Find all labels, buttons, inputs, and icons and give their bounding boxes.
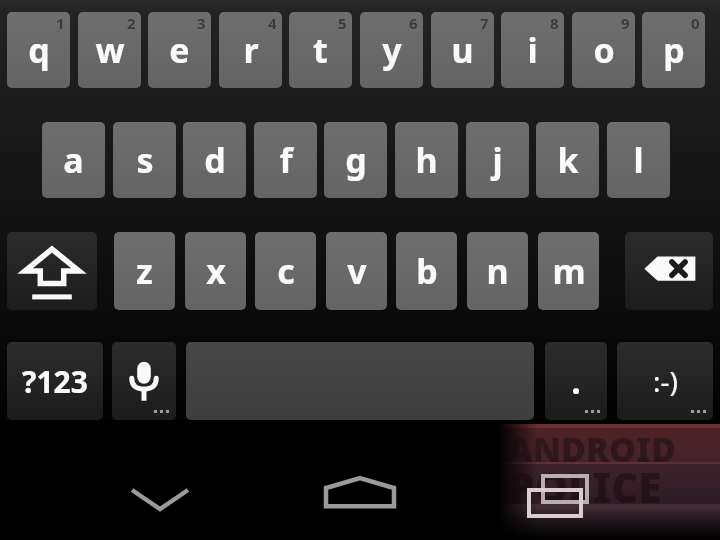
staticText: POLICE	[508, 458, 662, 515]
staticText: 7	[480, 13, 489, 33]
staticText: 4	[268, 13, 277, 33]
staticText: o	[593, 27, 615, 73]
button[interactable]: x	[185, 232, 246, 310]
staticText: q	[28, 27, 50, 73]
staticText: v	[347, 248, 367, 294]
button[interactable]: l	[607, 122, 670, 198]
staticText: :-)	[653, 362, 678, 400]
button[interactable]: Hide keyboard	[115, 460, 205, 530]
staticText: 0	[691, 13, 700, 33]
staticText: ANDROID	[508, 426, 677, 472]
button[interactable]: y	[360, 12, 423, 88]
button[interactable]: m	[538, 232, 599, 310]
button[interactable]: h	[395, 122, 458, 198]
button[interactable]: Recent apps	[515, 460, 605, 530]
button[interactable]: Shift	[7, 232, 97, 310]
button[interactable]: Symbols	[7, 342, 103, 420]
button[interactable]: u	[431, 12, 494, 88]
staticText: z	[136, 248, 153, 294]
button[interactable]: Space	[186, 342, 534, 420]
staticText: x	[206, 248, 226, 294]
button[interactable]: r	[219, 12, 282, 88]
staticText: 2	[127, 13, 136, 33]
staticText: 6	[409, 13, 418, 33]
button[interactable]: b	[396, 232, 457, 310]
staticText: c	[277, 248, 295, 294]
button[interactable]: o	[572, 12, 635, 88]
button[interactable]: s	[113, 122, 176, 198]
staticText: t	[313, 27, 328, 73]
staticText: m	[552, 248, 586, 294]
button[interactable]: Emoticon	[617, 342, 713, 420]
button[interactable]: p	[642, 12, 705, 88]
staticText: j	[492, 137, 503, 183]
staticText: w	[95, 27, 125, 73]
staticText: 9	[621, 13, 630, 33]
button[interactable]: z	[114, 232, 175, 310]
staticText: n	[486, 248, 509, 294]
staticText: p	[663, 27, 685, 73]
button[interactable]: Period	[545, 342, 607, 420]
staticText: 1	[56, 13, 65, 33]
button[interactable]: j	[466, 122, 529, 198]
staticText: u	[451, 27, 474, 73]
staticText: i	[527, 27, 538, 73]
button[interactable]: a	[42, 122, 105, 198]
staticText: b	[416, 248, 438, 294]
button[interactable]: v	[326, 232, 387, 310]
button[interactable]: Home	[315, 460, 405, 530]
staticText: .	[571, 358, 581, 404]
staticText: y	[382, 27, 402, 73]
button[interactable]: w	[78, 12, 141, 88]
staticText: l	[633, 137, 644, 183]
button[interactable]: c	[255, 232, 316, 310]
staticText: k	[557, 137, 579, 183]
button[interactable]: f	[254, 122, 317, 198]
button[interactable]: i	[501, 12, 564, 88]
staticText: s	[136, 137, 154, 183]
staticText: a	[63, 137, 84, 183]
button[interactable]: q	[7, 12, 70, 88]
button[interactable]: d	[183, 122, 246, 198]
staticText: 5	[338, 13, 347, 33]
button[interactable]: Backspace	[625, 232, 713, 310]
staticText: h	[415, 137, 438, 183]
staticText: e	[169, 27, 190, 73]
button[interactable]: Voice input	[112, 342, 176, 420]
button[interactable]: k	[536, 122, 599, 198]
button[interactable]: t	[289, 12, 352, 88]
button[interactable]: e	[148, 12, 211, 88]
staticText: r	[243, 27, 259, 73]
staticText: 3	[197, 13, 206, 33]
staticText: 8	[550, 13, 559, 33]
staticText: f	[279, 137, 293, 183]
button[interactable]: g	[324, 122, 387, 198]
staticText: ?123	[22, 361, 88, 402]
staticText: g	[345, 137, 367, 183]
button[interactable]: n	[467, 232, 528, 310]
staticText: d	[204, 137, 226, 183]
